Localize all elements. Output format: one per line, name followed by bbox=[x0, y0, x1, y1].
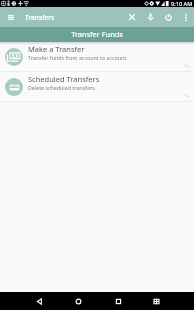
staticText: Delete scheduled transfers. bbox=[28, 84, 97, 91]
button[interactable]: Scheduled Transfers bbox=[0, 72, 194, 101]
button[interactable]: Split screen bbox=[146, 292, 166, 310]
button[interactable]: Voice search bbox=[141, 7, 159, 27]
staticText: Transfer Funds bbox=[71, 29, 123, 39]
button[interactable]: Navigation menu bbox=[0, 7, 22, 27]
button[interactable]: Power bbox=[159, 7, 177, 27]
button[interactable]: Home bbox=[68, 292, 88, 310]
button[interactable]: Recent apps bbox=[108, 292, 128, 310]
staticText: 9:10 AM bbox=[171, 0, 193, 7]
staticText: Make a Transfer bbox=[28, 44, 85, 54]
staticText: Transfer funds from account to account. bbox=[28, 54, 128, 61]
button[interactable]: More options bbox=[177, 7, 194, 27]
button[interactable]: Close bbox=[123, 7, 141, 27]
button[interactable]: Back bbox=[29, 292, 49, 310]
staticText: Transfers bbox=[25, 13, 55, 22]
button[interactable]: Make a Transfer bbox=[0, 42, 194, 71]
staticText: Scheduled Transfers bbox=[28, 74, 100, 84]
